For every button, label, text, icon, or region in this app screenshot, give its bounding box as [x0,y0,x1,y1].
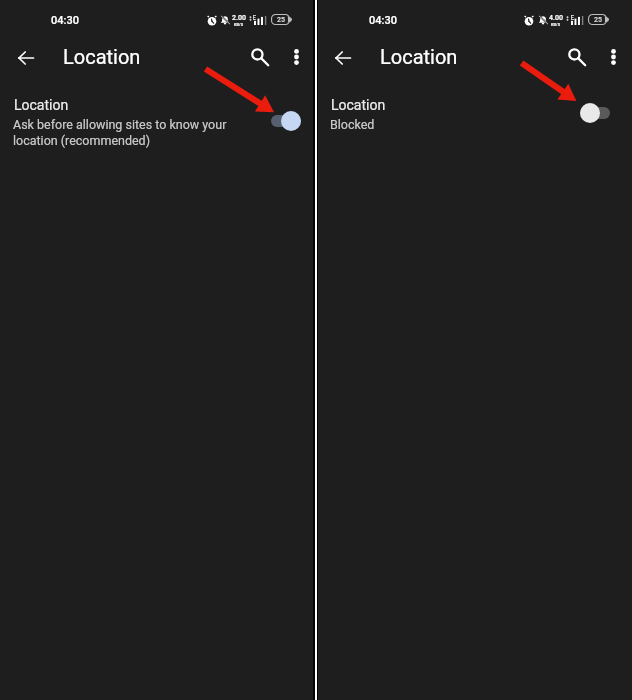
button[interactable]: Location on [271,111,301,131]
staticText: 04:30 [369,14,397,27]
staticText: 25 [277,16,285,24]
staticText: Location [14,97,69,113]
button[interactable]: More options [601,41,625,65]
staticText: KB/S [551,22,561,27]
button[interactable]: Back [13,45,38,70]
button[interactable]: Search [562,42,588,68]
staticText: Ask before allowing sites to know your l… [13,117,227,148]
staticText: Location [331,97,386,113]
button[interactable]: Back [330,45,355,70]
staticText: 04:30 [51,14,79,27]
button[interactable]: Location [0,90,313,156]
staticText: KB/S [234,22,244,27]
button[interactable]: Location [319,90,632,156]
staticText: 25 [594,16,602,24]
button[interactable]: More options [284,41,308,65]
staticText: 4.00 [549,14,563,22]
button[interactable]: Location off [580,103,610,123]
button[interactable]: Search [245,42,271,68]
staticText: 2.00 [232,14,246,22]
staticText: Blocked [330,117,375,132]
staticText: Location [380,45,458,68]
staticText: Location [63,45,141,68]
